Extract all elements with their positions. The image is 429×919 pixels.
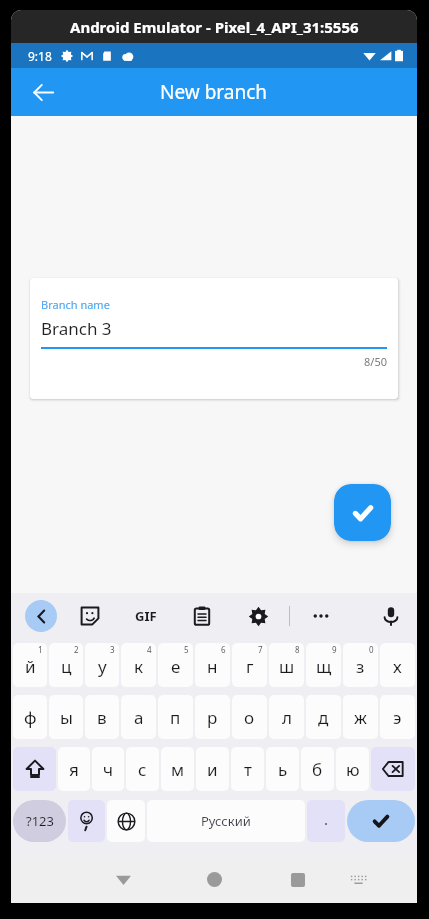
staticText: л (282, 706, 292, 729)
staticText: к (134, 655, 144, 678)
staticText: 1 (38, 644, 43, 655)
staticText: 6 (221, 644, 226, 655)
staticText: и (207, 758, 218, 781)
button[interactable]: 2 (49, 643, 83, 687)
staticText: ь (278, 758, 288, 781)
button[interactable]: Settings (247, 605, 269, 627)
staticText: б (312, 758, 323, 781)
button[interactable]: Clipboard (191, 605, 213, 627)
staticText: й (25, 655, 36, 678)
button[interactable]: Русский (147, 800, 305, 842)
staticText: а (134, 706, 144, 729)
button[interactable]: х (380, 643, 415, 687)
button[interactable]: Back (25, 600, 57, 632)
staticText: 7 (258, 644, 263, 655)
staticText: 8 (295, 644, 300, 655)
button[interactable]: 7 (232, 643, 267, 687)
button[interactable]: Backspace (371, 747, 415, 791)
staticText: в (97, 706, 107, 729)
staticText: ф (24, 706, 37, 729)
button[interactable]: 4 (121, 643, 156, 687)
button[interactable]: 1 (13, 643, 47, 687)
button[interactable]: я (58, 747, 90, 791)
button[interactable]: а (121, 695, 156, 739)
staticText: п (170, 706, 181, 729)
button[interactable]: 8 (269, 643, 304, 687)
button[interactable]: . (307, 800, 345, 842)
staticText: т (244, 758, 252, 781)
staticText: 8/50 (41, 354, 387, 369)
staticText: с (138, 758, 147, 781)
button[interactable]: и (196, 747, 229, 791)
staticText: н (207, 655, 218, 678)
button[interactable]: т (231, 747, 264, 791)
button[interactable]: Confirm (334, 484, 391, 541)
staticText: е (171, 655, 181, 678)
staticText: 2 (74, 644, 79, 655)
button[interactable]: Back (23, 72, 63, 112)
staticText: 5 (184, 644, 189, 655)
button[interactable]: Emoji (68, 800, 105, 842)
button[interactable]: л (269, 695, 304, 739)
button[interactable]: м (161, 747, 194, 791)
button[interactable]: о (232, 695, 267, 739)
staticText: у (98, 655, 107, 678)
staticText: ю (346, 758, 360, 781)
staticText: ч (103, 758, 114, 781)
button[interactable]: 0 (343, 643, 378, 687)
staticText: Русский (201, 812, 251, 830)
button[interactable]: ы (49, 695, 83, 739)
staticText: 3 (110, 644, 115, 655)
button[interactable]: Change language (107, 800, 145, 842)
staticText: з (356, 655, 365, 678)
button[interactable]: ?123 (13, 800, 66, 842)
button[interactable]: ж (343, 695, 378, 739)
staticText: ц (61, 655, 72, 678)
staticText: 4 (147, 644, 152, 655)
staticText: 9 (332, 644, 337, 655)
button[interactable]: в (85, 695, 119, 739)
button[interactable]: с (126, 747, 159, 791)
staticText: ы (60, 706, 73, 729)
button[interactable]: Voice input (379, 604, 403, 628)
button[interactable]: Stickers (79, 605, 101, 627)
staticText: э (393, 706, 402, 729)
staticText: Branch 3 (41, 317, 112, 340)
button[interactable]: 5 (158, 643, 193, 687)
button[interactable]: э (380, 695, 415, 739)
staticText: д (318, 706, 329, 729)
button[interactable]: Branch name (30, 278, 398, 399)
staticText: р (207, 706, 218, 729)
staticText: 9:18 (28, 48, 52, 64)
staticText: о (244, 706, 255, 729)
button[interactable]: 9 (306, 643, 341, 687)
button[interactable]: Enter (347, 800, 415, 842)
button[interactable]: 3 (85, 643, 119, 687)
staticText: х (393, 655, 402, 678)
staticText: Android Emulator - Pixel_4_API_31:5556 (70, 17, 359, 37)
staticText: GIF (135, 607, 157, 625)
staticText: м (171, 758, 185, 781)
button[interactable]: р (195, 695, 230, 739)
button[interactable]: Shift (13, 747, 56, 791)
button[interactable]: б (301, 747, 334, 791)
button[interactable]: Home (194, 856, 234, 903)
staticText: щ (316, 655, 332, 678)
staticText: 0 (369, 644, 374, 655)
button[interactable]: 6 (195, 643, 230, 687)
button[interactable]: Back (103, 856, 143, 903)
button[interactable]: ф (13, 695, 47, 739)
button[interactable]: ю (336, 747, 369, 791)
button[interactable]: д (306, 695, 341, 739)
staticText: я (69, 758, 79, 781)
button[interactable]: Hide keyboard (341, 856, 375, 903)
button[interactable]: More (310, 605, 332, 627)
staticText: г (246, 655, 254, 678)
button[interactable]: ч (92, 747, 124, 791)
button[interactable]: ь (266, 747, 299, 791)
button[interactable]: GIF (135, 607, 157, 625)
button[interactable]: п (158, 695, 193, 739)
button[interactable]: Recents (278, 856, 318, 903)
staticText: . (324, 809, 329, 829)
staticText: ж (354, 706, 367, 729)
